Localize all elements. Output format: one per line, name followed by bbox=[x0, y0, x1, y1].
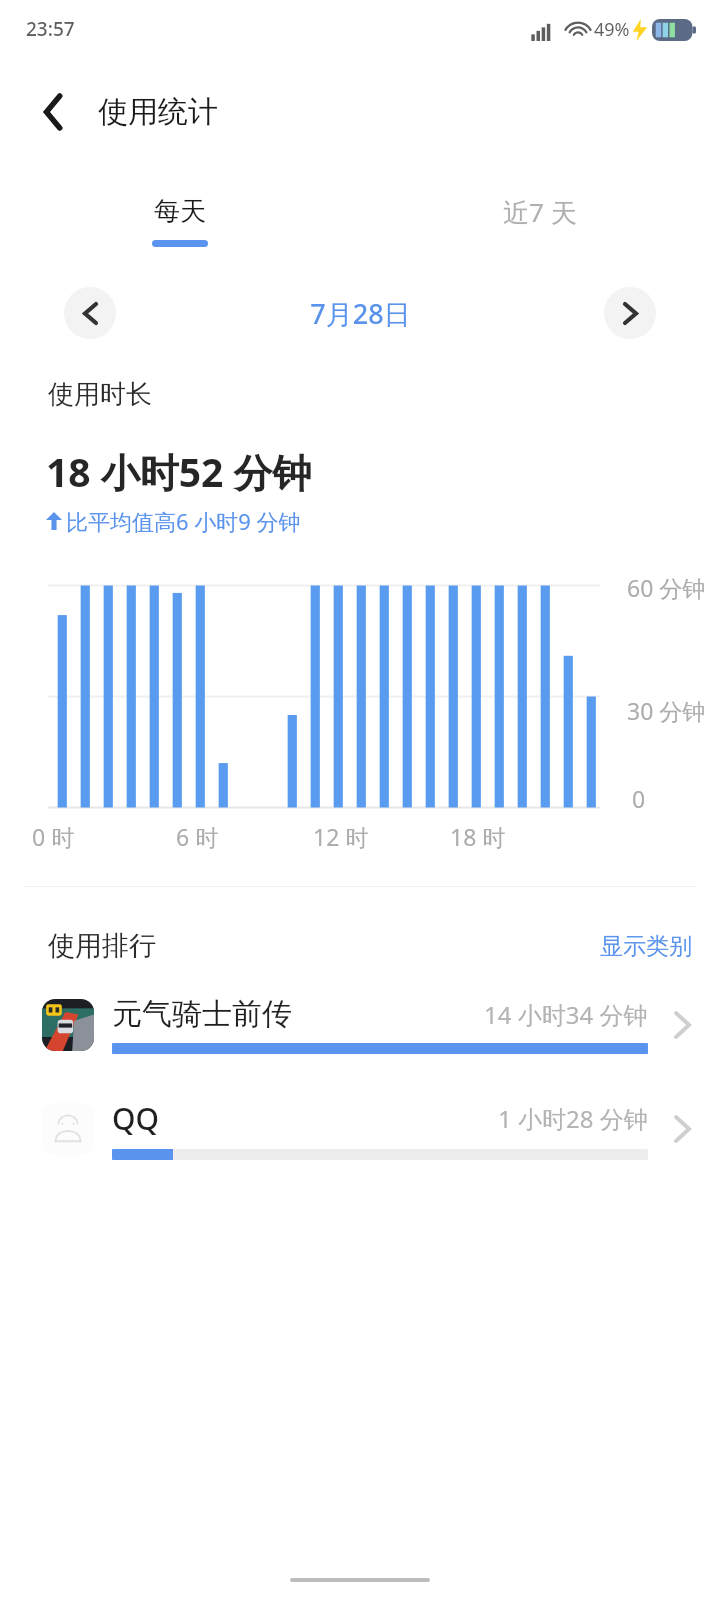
staticText: 使用统计 bbox=[98, 93, 218, 131]
staticText: 比平均值高6 小时9 分钟 bbox=[66, 506, 301, 536]
staticText: 49% bbox=[594, 17, 630, 42]
staticText: 18 时 bbox=[450, 821, 506, 852]
staticText: 显示类别 bbox=[600, 932, 692, 961]
staticText: 12 时 bbox=[313, 821, 369, 852]
staticText: 0 bbox=[632, 783, 646, 814]
staticText: 使用时长 bbox=[48, 378, 152, 411]
staticText: 使用排行 bbox=[48, 929, 156, 963]
staticText: 6 时 bbox=[176, 821, 219, 852]
staticText: 7月28日 bbox=[310, 295, 411, 332]
staticText: 元气骑士前传 bbox=[112, 995, 484, 1033]
staticText: 1 小时28 分钟 bbox=[498, 1102, 648, 1135]
button[interactable]: 元气骑士前传 bbox=[0, 995, 720, 1054]
staticText: 30 分钟 bbox=[627, 695, 706, 726]
staticText: 每天 bbox=[154, 195, 206, 228]
staticText: 14 小时34 分钟 bbox=[484, 998, 648, 1031]
button[interactable]: Next day bbox=[604, 287, 656, 339]
button[interactable]: Back bbox=[26, 84, 82, 140]
button[interactable]: 近7 天 bbox=[360, 166, 720, 276]
staticText: 18 小时52 分钟 bbox=[46, 445, 312, 498]
staticText: QQ bbox=[112, 1098, 498, 1139]
button[interactable]: QQ bbox=[0, 1098, 720, 1160]
button[interactable]: 显示类别 bbox=[600, 932, 720, 961]
button[interactable]: 每天 bbox=[0, 166, 360, 276]
staticText: 0 时 bbox=[32, 821, 75, 852]
staticText: 60 分钟 bbox=[627, 572, 706, 603]
staticText: 近7 天 bbox=[503, 194, 577, 230]
button[interactable]: Previous day bbox=[64, 287, 116, 339]
staticText: 23:57 bbox=[26, 16, 75, 42]
